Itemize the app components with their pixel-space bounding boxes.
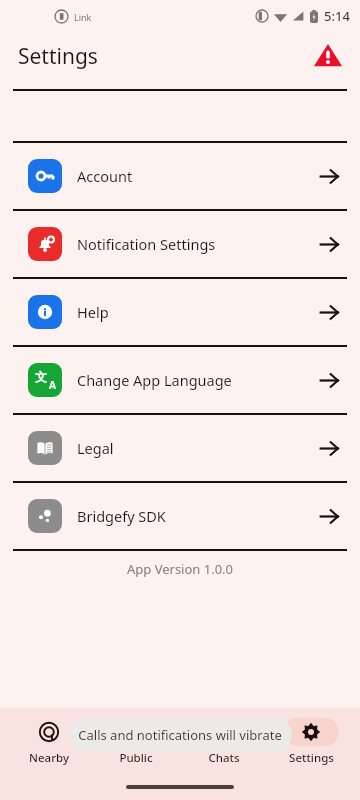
staticText: Legal <box>77 438 319 458</box>
button[interactable]: Chats <box>186 718 262 766</box>
staticText: Help <box>77 302 319 322</box>
button[interactable]: Legal <box>0 415 360 481</box>
staticText: 文 <box>35 369 47 384</box>
button[interactable]: 文 <box>0 347 360 413</box>
staticText: Link <box>74 11 92 23</box>
button[interactable]: Warning <box>310 38 346 74</box>
staticText: Settings <box>289 750 334 766</box>
button[interactable]: Nearby <box>11 718 87 766</box>
staticText: App Version 1.0.0 <box>0 560 360 578</box>
button[interactable]: Account <box>0 143 360 209</box>
staticText: Nearby <box>29 750 69 766</box>
staticText: Change App Language <box>77 370 319 390</box>
staticText: Public <box>119 750 153 766</box>
button[interactable]: Notification Settings <box>0 211 360 277</box>
button[interactable]: Bridgefy SDK <box>0 483 360 549</box>
staticText: A <box>49 378 56 392</box>
staticText: Chats <box>208 750 240 766</box>
staticText: Bridgefy SDK <box>77 506 319 526</box>
staticText: Notification Settings <box>77 234 319 254</box>
staticText: Settings <box>18 42 98 71</box>
button[interactable]: Public <box>98 718 174 766</box>
button[interactable]: Help <box>0 279 360 345</box>
staticText: 5:14 <box>324 7 350 25</box>
staticText: Calls and notifications will vibrate <box>78 726 282 744</box>
button[interactable]: Settings <box>273 718 349 766</box>
staticText: Account <box>77 166 319 186</box>
